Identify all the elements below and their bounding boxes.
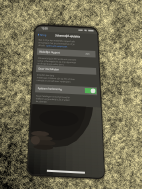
button[interactable]: later kunt aanpassen [47, 43, 74, 46]
button[interactable] [36, 65, 96, 75]
button[interactable] [35, 84, 97, 95]
button[interactable]: Terug [38, 32, 49, 37]
button[interactable]: Systeem herkenning inschakelen [84, 87, 97, 94]
button[interactable] [37, 48, 95, 57]
